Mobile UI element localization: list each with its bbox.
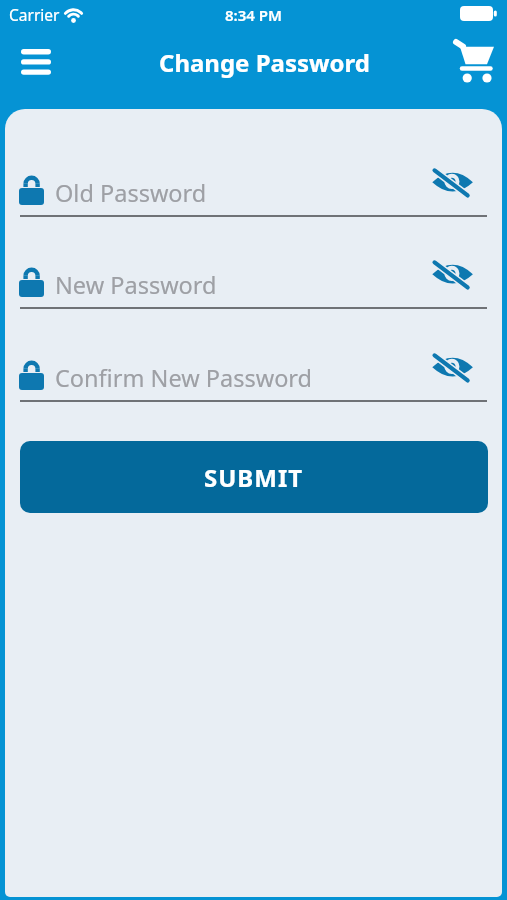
staticText: Change Password bbox=[11, 46, 507, 79]
staticText: 8:34 PM bbox=[0, 5, 507, 25]
button[interactable]: Confirm New Password bbox=[19, 350, 488, 402]
staticText: Old Password bbox=[55, 177, 207, 209]
button[interactable]: Old Password bbox=[19, 165, 488, 217]
staticText: New Password bbox=[55, 269, 217, 301]
staticText: Carrier bbox=[9, 4, 60, 25]
staticText: SUBMIT bbox=[204, 461, 304, 494]
button[interactable]: New Password bbox=[19, 257, 488, 309]
button[interactable] bbox=[448, 34, 502, 88]
button[interactable]: SUBMIT bbox=[20, 441, 488, 513]
staticText: Confirm New Password bbox=[55, 362, 313, 394]
button[interactable] bbox=[10, 36, 62, 88]
